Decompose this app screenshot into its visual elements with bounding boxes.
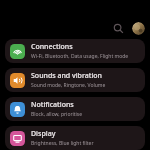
staticText: Sounds and vibration: [31, 71, 103, 81]
button[interactable]: Account: [132, 22, 145, 35]
staticText: Wi-Fi, Bluetooth, Data usage, Flight mod…: [31, 53, 129, 60]
staticText: Connections: [31, 42, 73, 52]
staticText: Notifications: [31, 100, 74, 110]
staticText: Brightness, Blue light filter: [31, 140, 94, 147]
button[interactable]: Display: [5, 126, 145, 150]
staticText: Block, allow, prioritise: [31, 111, 83, 118]
button[interactable]: Sounds and vibration: [5, 68, 145, 92]
button[interactable]: Search: [109, 19, 127, 37]
button[interactable]: Notifications: [5, 97, 145, 121]
staticText: Sound mode, Ringtone, Volume: [31, 82, 106, 89]
staticText: Display: [31, 129, 56, 139]
button[interactable]: Connections: [5, 39, 145, 63]
